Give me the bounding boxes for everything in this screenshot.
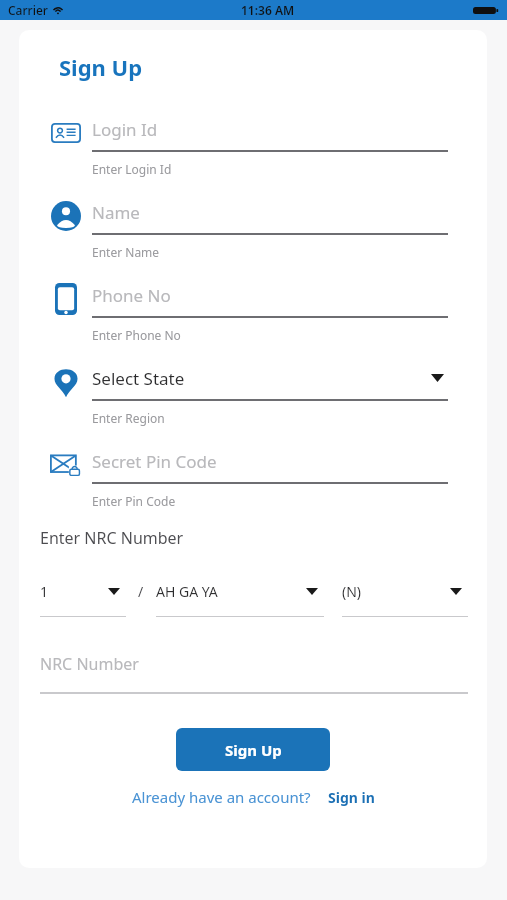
button[interactable]: Login Id (92, 108, 448, 150)
staticText: Enter Phone No (92, 327, 181, 343)
staticText: Already have an account? (132, 787, 311, 807)
staticText: Enter NRC Number (40, 527, 184, 549)
staticText: Enter Pin Code (92, 493, 176, 509)
staticText: Enter Name (92, 244, 160, 260)
button[interactable]: Name (92, 191, 448, 233)
button[interactable]: Secret Pin Code (92, 440, 448, 482)
staticText: Carrier (8, 2, 48, 18)
staticText: / (138, 582, 144, 601)
staticText: Sign in (328, 788, 375, 807)
staticText: Enter Login Id (92, 161, 172, 177)
staticText: Sign Up (225, 740, 282, 760)
staticText: Select State (92, 367, 431, 390)
button[interactable]: Sign Up (176, 728, 330, 771)
staticText: NRC Number (40, 653, 139, 675)
staticText: Name (92, 201, 448, 224)
button[interactable]: 1 (40, 576, 126, 617)
staticText: (N) (342, 582, 450, 601)
staticText: Phone No (92, 284, 448, 307)
staticText: 11:36 AM (241, 2, 295, 18)
button[interactable]: AH GA YA (156, 576, 324, 617)
button[interactable]: Select State (92, 357, 448, 399)
button[interactable]: (N) (342, 576, 468, 617)
button[interactable]: Already have an account? (132, 787, 311, 807)
button[interactable]: NRC Number (40, 653, 468, 694)
button[interactable]: Sign in (328, 788, 375, 807)
staticText: 1 (40, 582, 108, 601)
staticText: Sign Up (59, 52, 143, 82)
staticText: Secret Pin Code (92, 450, 448, 473)
staticText: Enter Region (92, 410, 165, 426)
staticText: AH GA YA (156, 582, 306, 601)
staticText: Login Id (92, 118, 448, 141)
button[interactable]: Phone No (92, 274, 448, 316)
